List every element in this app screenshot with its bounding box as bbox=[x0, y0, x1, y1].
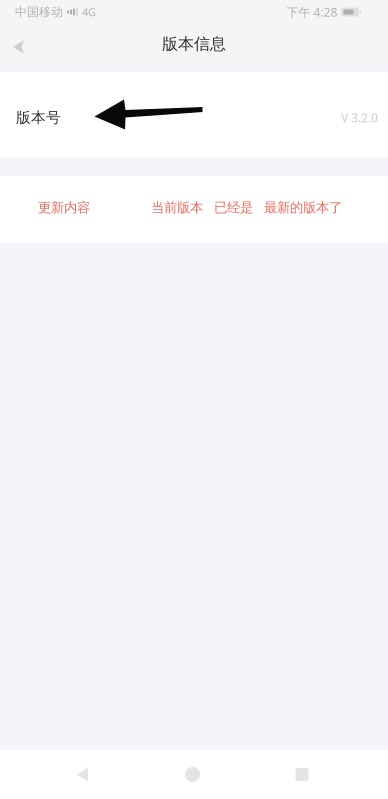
staticText: 版本信息 bbox=[162, 34, 226, 54]
staticText: 下午 4:28 bbox=[286, 4, 337, 20]
staticText: 已经是 bbox=[214, 199, 253, 216]
button[interactable]: Recent apps bbox=[247, 750, 357, 799]
staticText: 中国移动 bbox=[15, 5, 63, 19]
button[interactable]: 更新内容 bbox=[0, 176, 388, 243]
staticText: 4G bbox=[82, 5, 96, 19]
button[interactable]: Home bbox=[138, 750, 247, 799]
button[interactable]: 版本号 bbox=[0, 72, 388, 157]
staticText: 更新内容 bbox=[38, 199, 90, 216]
button[interactable]: Back bbox=[28, 750, 138, 799]
button[interactable]: Back bbox=[0, 24, 37, 64]
staticText: 最新的版本了 bbox=[264, 199, 342, 216]
staticText: 版本号 bbox=[16, 108, 61, 126]
staticText: V 3.2.0 bbox=[341, 109, 378, 125]
staticText: 当前版本 bbox=[151, 199, 203, 216]
